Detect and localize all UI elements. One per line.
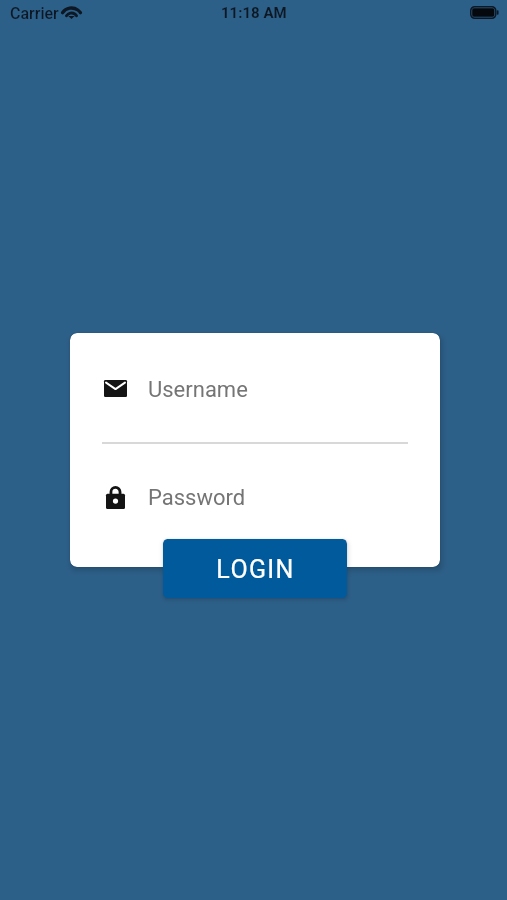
staticText: Carrier — [10, 4, 59, 23]
staticText: LOGIN — [216, 555, 295, 584]
button[interactable]: Password — [94, 465, 416, 527]
button[interactable]: LOGIN — [163, 539, 347, 598]
other: Wi-Fi — [62, 6, 81, 19]
staticText: Username — [148, 377, 248, 403]
other: Battery — [470, 6, 500, 19]
staticText: Password — [148, 485, 246, 511]
button[interactable]: Username — [94, 357, 416, 419]
staticText: 11:18 AM — [221, 4, 287, 22]
